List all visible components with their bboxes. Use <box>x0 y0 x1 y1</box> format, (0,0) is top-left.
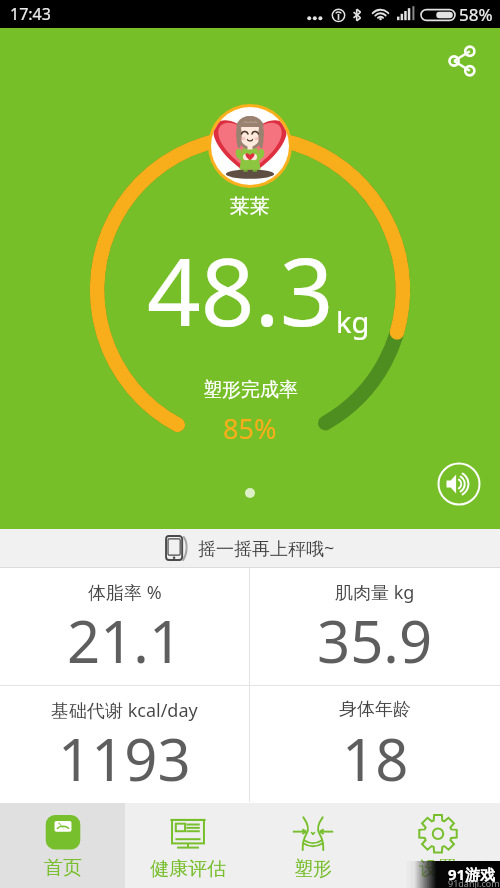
button[interactable]: 设置 <box>375 803 500 888</box>
button[interactable]: Sound <box>431 456 487 512</box>
staticText: 18 <box>342 719 409 798</box>
button[interactable]: 体脂率 % <box>0 568 249 685</box>
staticText: 体脂率 % <box>88 580 162 605</box>
staticText: 塑形完成率 <box>203 378 298 402</box>
button[interactable]: 肌肉量 kg <box>250 568 500 685</box>
button[interactable]: 摇一摇再上秤哦~ <box>0 529 500 567</box>
staticText: 设置 <box>419 857 457 881</box>
staticText: 1193 <box>58 719 191 798</box>
staticText: 21.1 <box>67 601 183 680</box>
staticText: 肌肉量 kg <box>335 580 415 605</box>
staticText: 48.3 <box>147 226 334 354</box>
staticText: 首页 <box>44 856 82 880</box>
button[interactable]: 塑形 <box>250 803 375 888</box>
staticText: 85% <box>223 410 277 447</box>
button[interactable]: 首页 <box>0 803 125 888</box>
staticText: 身体年龄 <box>339 698 411 721</box>
button[interactable]: 健康评估 <box>125 803 250 888</box>
staticText: kg <box>336 302 370 341</box>
button[interactable]: 基础代谢 kcal/day <box>0 686 249 802</box>
staticText: 58% <box>459 3 493 26</box>
staticText: 摇一摇再上秤哦~ <box>198 536 335 561</box>
staticText: 91danji.com <box>448 877 500 888</box>
button[interactable]: 身体年龄 <box>250 686 500 802</box>
staticText: 塑形 <box>294 857 332 881</box>
staticText: 17:43 <box>10 3 51 25</box>
staticText: 35.9 <box>317 601 433 680</box>
staticText: 基础代谢 kcal/day <box>51 698 198 723</box>
button[interactable]: Share <box>438 37 486 85</box>
staticText: 91游戏 <box>448 864 496 884</box>
staticText: 健康评估 <box>150 857 226 881</box>
button[interactable]: Profile <box>211 107 289 185</box>
staticText: 莱莱 <box>230 194 270 219</box>
